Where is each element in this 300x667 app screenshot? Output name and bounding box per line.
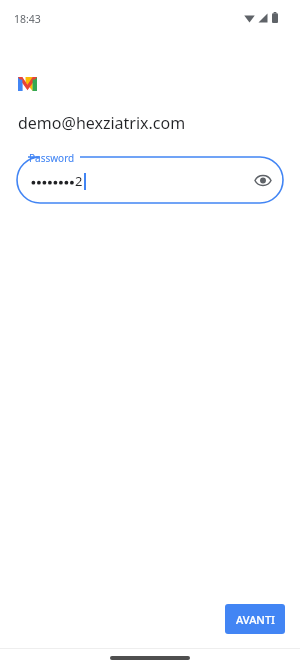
- button[interactable]: Show password: [250, 167, 276, 193]
- staticText: 2: [75, 172, 83, 190]
- staticText: 18:43: [14, 12, 41, 26]
- button[interactable]: AVANTI: [225, 604, 285, 634]
- staticText: demo@hexziatrix.com: [18, 112, 186, 134]
- staticText: Password: [29, 151, 75, 165]
- staticText: AVANTI: [236, 612, 275, 627]
